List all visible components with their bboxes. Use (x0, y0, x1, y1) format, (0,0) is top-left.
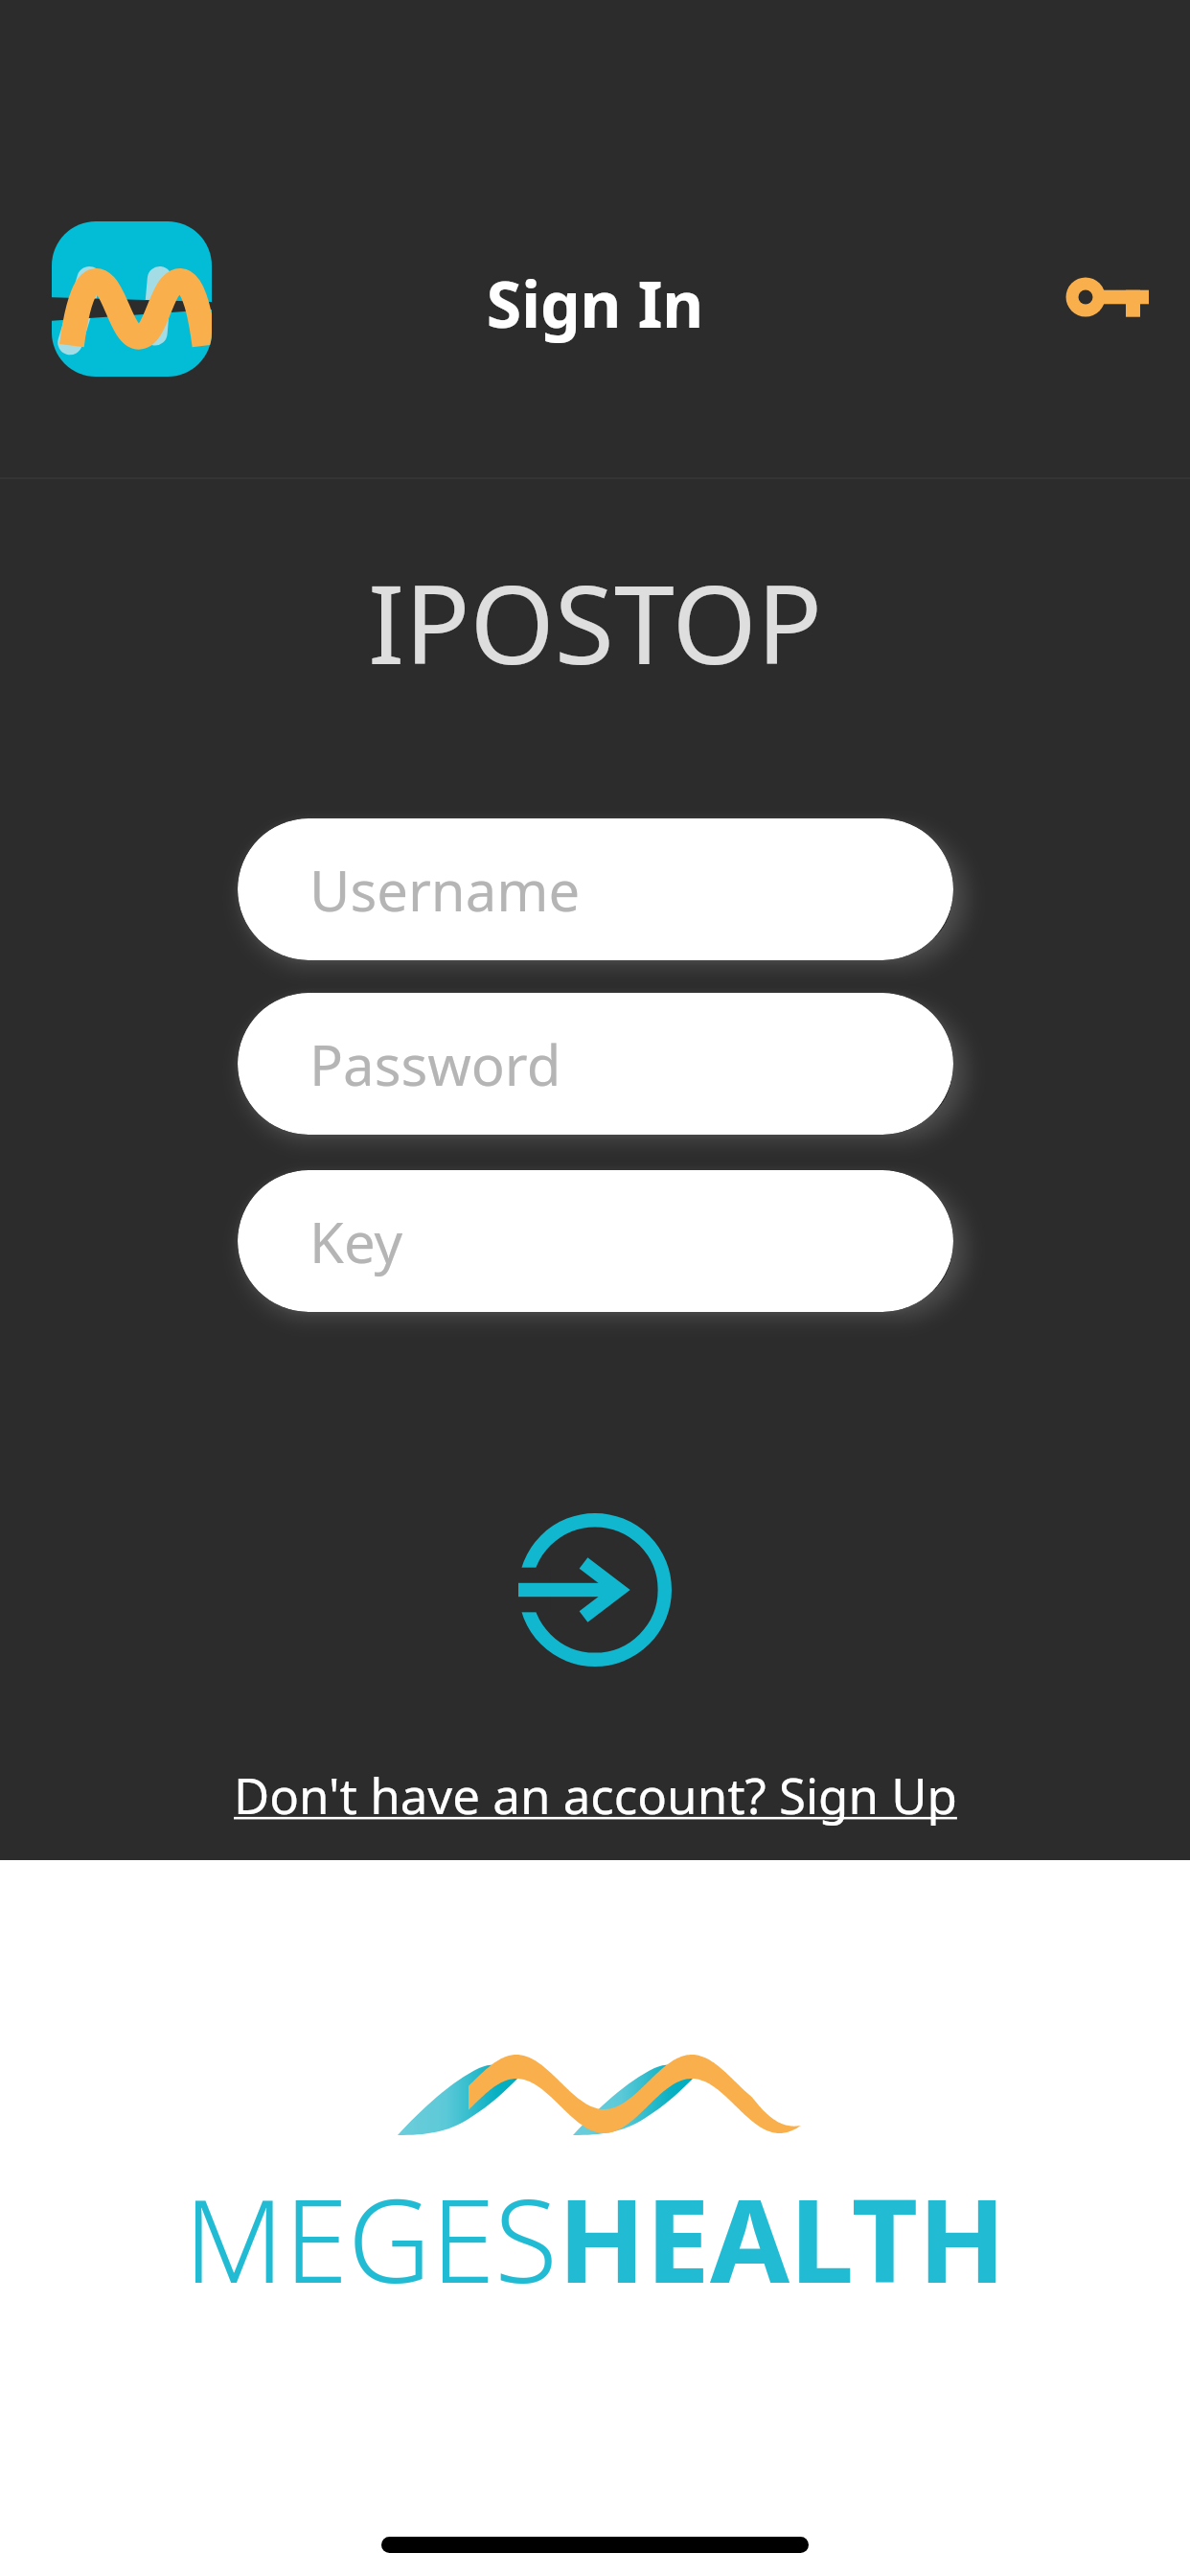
staticText: Password (309, 1026, 561, 1102)
staticText: IPOSTOP (0, 548, 1190, 696)
button[interactable]: App logo (52, 221, 212, 377)
button[interactable]: Password (238, 993, 953, 1135)
staticText: Username (309, 852, 581, 928)
button[interactable]: Don't have an account? Sign Up (0, 1761, 1190, 1828)
button[interactable]: Username (238, 818, 953, 960)
button[interactable]: Key (1023, 234, 1150, 360)
staticText: HEALTH (558, 2160, 1006, 2316)
staticText: MEGES (184, 2160, 558, 2316)
staticText: Sign In (0, 260, 1190, 346)
button[interactable]: Key (238, 1170, 953, 1312)
button[interactable]: Sign in (499, 1494, 691, 1686)
staticText: Don't have an account? Sign Up (234, 1761, 957, 1828)
staticText: Key (309, 1204, 403, 1279)
